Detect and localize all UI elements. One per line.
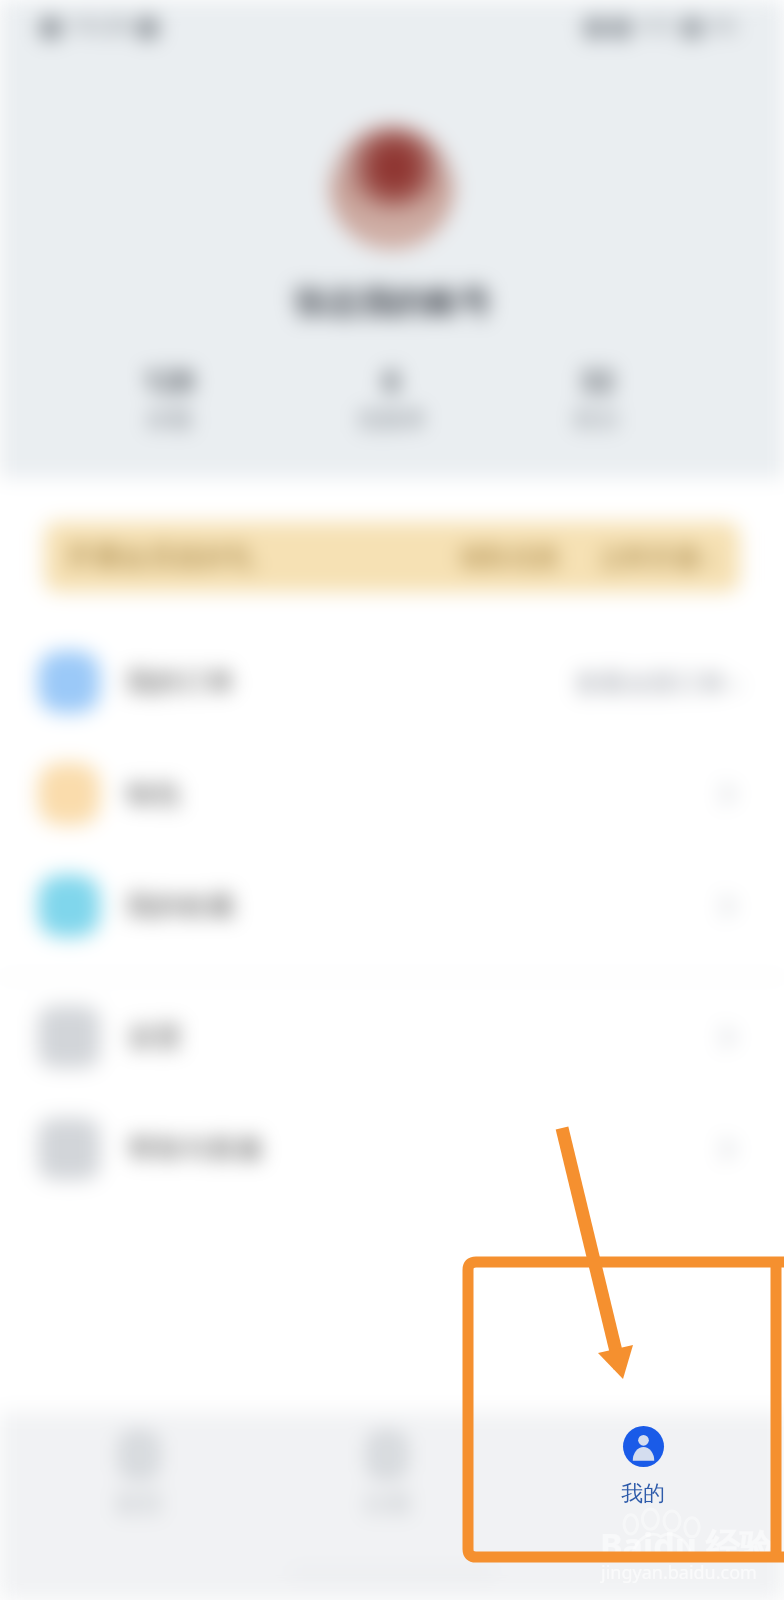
staticText: ⬤⬤ HD ⬤ 86	[582, 9, 738, 40]
button[interactable]: 我的收藏	[0, 850, 784, 962]
button[interactable]: 开通会员送好礼	[44, 522, 740, 592]
staticText: 我的订单	[126, 665, 234, 699]
other: 我的	[623, 1426, 664, 1467]
other: 分类	[364, 1432, 410, 1478]
staticText: ⬤ 10:28 ⬤	[38, 9, 161, 40]
staticText: jingyan.baidu.com	[601, 1560, 757, 1585]
staticText: 积分	[574, 405, 620, 434]
staticText: 查看全部订单 ›	[575, 665, 740, 699]
staticText: 余额	[146, 405, 192, 434]
staticText: 6	[383, 360, 401, 401]
button[interactable]: 分类	[317, 1432, 457, 1519]
staticText: Baidu 经验	[600, 1522, 774, 1568]
staticText: 立即开通 ›	[599, 540, 714, 574]
button[interactable]: 128	[99, 360, 239, 434]
staticText: 开通会员送好礼	[66, 540, 255, 574]
staticText: 帮助与客服	[128, 1132, 263, 1166]
staticText: 领取优惠	[459, 542, 559, 573]
button[interactable]: 我的	[583, 1420, 703, 1520]
button[interactable]: 6	[321, 360, 461, 434]
button[interactable]: 帮助与客服	[0, 1093, 784, 1205]
button[interactable]: 首页	[69, 1432, 209, 1519]
button[interactable]: 钱包	[0, 738, 784, 850]
button[interactable]: 32	[527, 360, 667, 434]
staticText: 我的收藏	[126, 889, 234, 923]
button[interactable]: 设置	[0, 981, 784, 1093]
staticText: 32	[580, 360, 615, 401]
staticText: 设置	[128, 1020, 182, 1054]
button[interactable]: 我的订单	[0, 626, 784, 738]
button[interactable]	[330, 126, 454, 250]
staticText: 张志强的账号	[293, 282, 491, 324]
other: Highlight annotation	[0, 0, 784, 1600]
staticText: 128	[143, 360, 195, 401]
staticText: 我的	[621, 1480, 665, 1508]
other: 首页	[116, 1432, 162, 1478]
staticText: 优惠券	[357, 405, 426, 434]
staticText: 钱包	[126, 777, 180, 811]
